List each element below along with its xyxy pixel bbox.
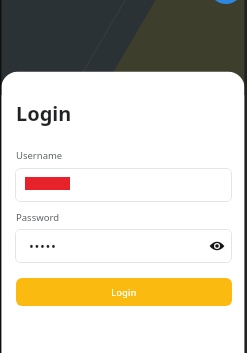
- button[interactable]: •••••: [15, 229, 232, 263]
- staticText: Login: [16, 100, 72, 127]
- button[interactable]: Login: [16, 278, 232, 306]
- staticText: Login: [111, 286, 137, 298]
- staticText: Username: [16, 149, 63, 162]
- button[interactable]: [15, 168, 232, 202]
- staticText: Password: [16, 211, 59, 224]
- button[interactable]: Show password: [207, 236, 227, 256]
- staticText: •••••: [29, 237, 57, 255]
